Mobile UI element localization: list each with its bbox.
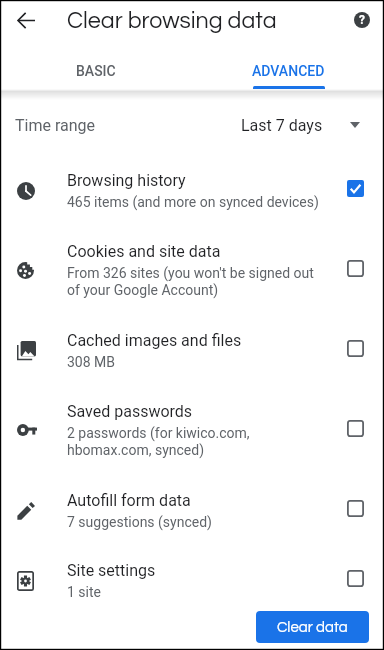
staticText: Autofill form data [67, 491, 191, 510]
staticText: Clear browsing data [67, 7, 277, 33]
staticText: Saved passwords [67, 402, 193, 421]
staticText: From 326 sites (you won't be signed out … [67, 265, 328, 299]
staticText: 308 MB [67, 354, 116, 371]
staticText: Time range [15, 116, 96, 135]
staticText: Cached images and files [67, 331, 242, 350]
button[interactable]: BASIC [0, 56, 192, 86]
button[interactable]: Autofill form data [0, 475, 384, 546]
button[interactable]: Cached images and files [0, 315, 384, 386]
staticText: Cookies and site data [67, 242, 221, 261]
staticText: 1 site [67, 584, 101, 601]
staticText: Site settings [67, 561, 156, 580]
button[interactable]: Saved passwords [0, 386, 384, 474]
staticText: 2 passwords (for kiwico.com, hbomax.com,… [67, 425, 328, 459]
staticText: Clear data [277, 620, 348, 635]
staticText: Last 7 days [241, 116, 323, 135]
button[interactable]: Help [344, 2, 380, 38]
button[interactable]: Clear data [256, 611, 369, 643]
staticText: ? [359, 13, 365, 27]
button[interactable]: Cookies and site data [0, 226, 384, 314]
staticText: ADVANCED [252, 63, 325, 79]
button[interactable]: Browsing history [0, 155, 384, 226]
button[interactable]: ADVANCED [192, 56, 384, 86]
staticText: BASIC [76, 63, 116, 79]
button[interactable]: Back [8, 2, 44, 38]
staticText: Browsing history [67, 171, 186, 190]
staticText: 7 suggestions (synced) [67, 514, 212, 531]
button[interactable]: Time range [0, 96, 384, 154]
button[interactable]: Site settings [0, 545, 384, 616]
staticText: 465 items (and more on synced devices) [67, 194, 319, 211]
